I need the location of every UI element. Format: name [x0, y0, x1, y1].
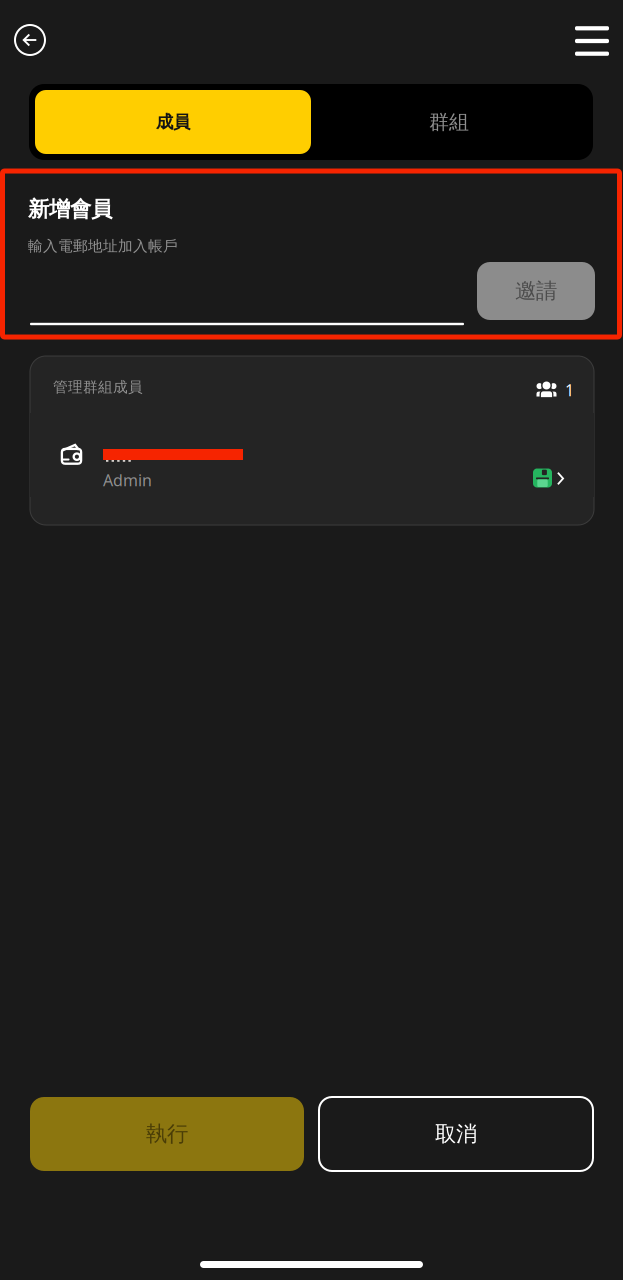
staticText: 執行 — [146, 1121, 188, 1147]
staticText: Admin — [103, 469, 152, 491]
button[interactable]: Back — [13, 23, 47, 57]
staticText: 新增會員 — [28, 196, 112, 222]
staticText: 輸入電郵地址加入帳戶 — [28, 237, 178, 255]
staticText: 邀請 — [515, 278, 557, 304]
button[interactable]: Menu — [575, 26, 609, 55]
staticText: 管理群組成員 — [53, 378, 143, 396]
button[interactable]: Admin — [30, 413, 594, 497]
button[interactable]: 取消 — [319, 1097, 593, 1171]
staticText: 1 — [565, 379, 574, 401]
button[interactable]: 群組 — [311, 90, 587, 154]
button[interactable]: 邀請 — [477, 262, 595, 320]
staticText: 成員 — [156, 111, 190, 133]
button[interactable]: 成員 — [35, 90, 311, 154]
staticText: 取消 — [435, 1121, 477, 1147]
button[interactable]: 執行 — [30, 1097, 304, 1171]
staticText: 群組 — [429, 110, 469, 134]
